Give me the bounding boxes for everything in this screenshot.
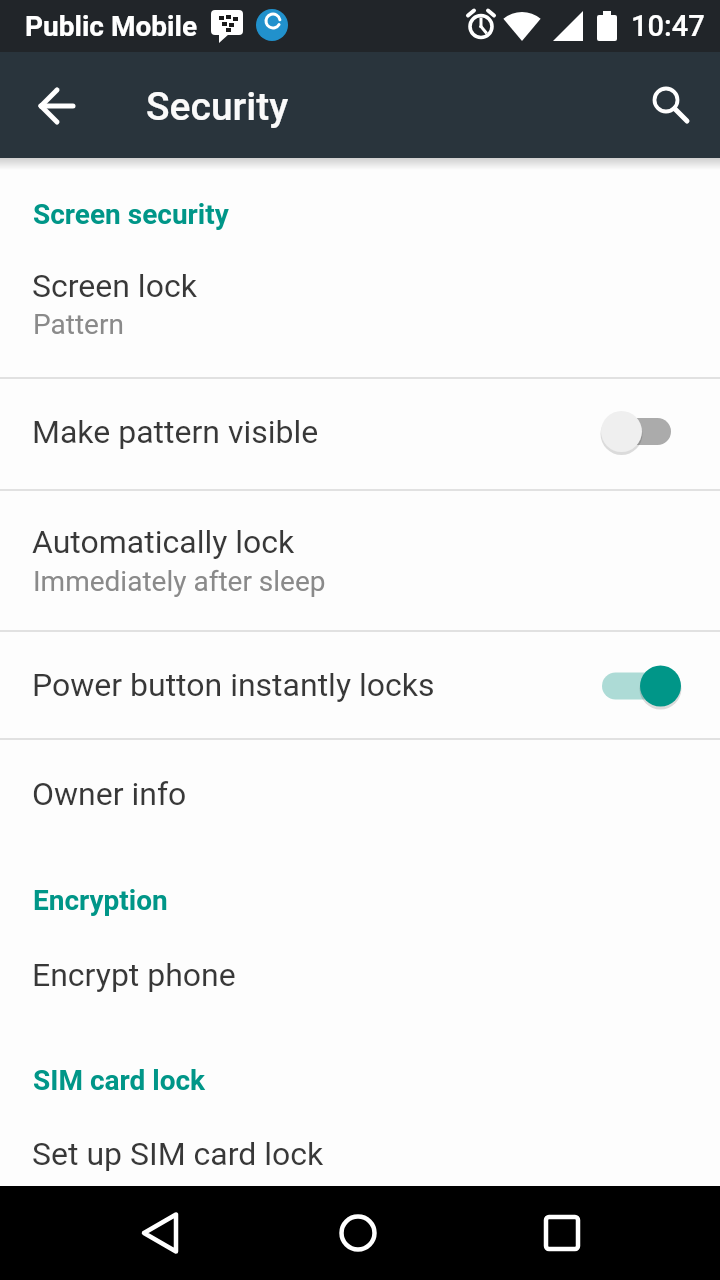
button[interactable] <box>512 1190 612 1278</box>
button[interactable] <box>0 378 720 490</box>
button[interactable] <box>110 1190 210 1278</box>
staticText: Immediately after sleep <box>33 565 326 598</box>
button[interactable] <box>596 406 686 458</box>
staticText: Screen lock <box>32 267 197 305</box>
button[interactable] <box>0 240 720 378</box>
staticText: Encrypt phone <box>32 956 236 994</box>
staticText: Power button instantly locks <box>32 666 435 704</box>
button[interactable] <box>0 490 720 631</box>
staticText: Encryption <box>33 884 168 917</box>
button[interactable] <box>0 1106 720 1186</box>
button[interactable] <box>0 631 720 739</box>
button[interactable] <box>630 64 706 140</box>
staticText: Public Mobile <box>25 10 198 43</box>
staticText: Owner info <box>32 775 187 813</box>
button[interactable] <box>0 927 720 1023</box>
button[interactable] <box>308 1190 408 1278</box>
staticText: 10:47 <box>631 9 705 43</box>
staticText: Make pattern visible <box>32 413 319 451</box>
staticText: Screen security <box>33 198 229 231</box>
staticText: Automatically lock <box>32 523 295 561</box>
staticText: SIM card lock <box>33 1064 206 1097</box>
staticText: Pattern <box>33 308 124 341</box>
button[interactable] <box>596 660 686 712</box>
button[interactable] <box>0 739 720 851</box>
staticText: Security <box>146 84 289 130</box>
staticText: Set up SIM card lock <box>32 1135 324 1173</box>
button[interactable] <box>20 70 92 142</box>
